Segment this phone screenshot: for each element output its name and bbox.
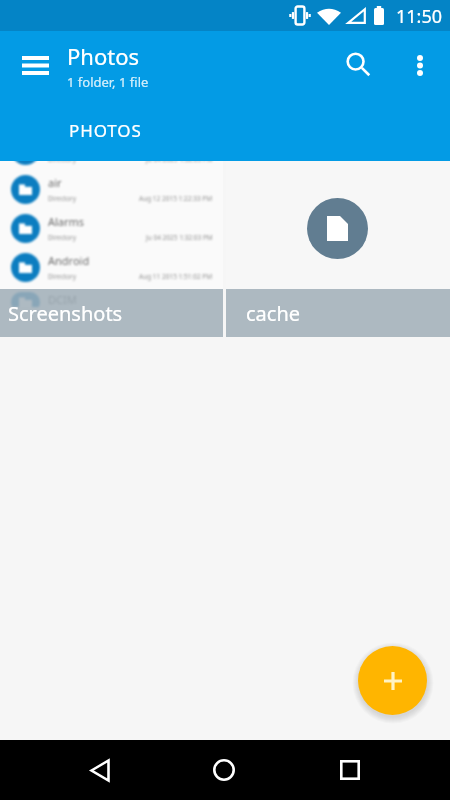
- button[interactable]: Back: [70, 740, 130, 800]
- button[interactable]: Home: [194, 740, 254, 800]
- staticText: Ju 04 2025 1:32:03 PM: [146, 161, 213, 164]
- button[interactable]: Alarms: [0, 161, 223, 337]
- staticText: Ju 04 2025 1:32:03 PM: [146, 233, 213, 242]
- staticText: Photos: [67, 41, 140, 71]
- button[interactable]: PHOTOS: [53, 115, 158, 145]
- button[interactable]: More options: [396, 41, 444, 89]
- staticText: DCIM: [48, 292, 77, 307]
- button[interactable]: Recent apps: [320, 740, 380, 800]
- staticText: Android: [48, 253, 90, 268]
- staticText: Aug 12 2015 1:22:33 PM: [139, 194, 213, 203]
- staticText: Directory: [48, 161, 77, 164]
- staticText: Alarms: [48, 214, 85, 229]
- staticText: air: [48, 175, 62, 190]
- button[interactable]: Open navigation drawer: [10, 40, 60, 90]
- staticText: cache: [246, 300, 301, 327]
- staticText: Directory: [48, 311, 77, 320]
- staticText: 11:50: [396, 4, 443, 29]
- staticText: Directory: [48, 233, 77, 242]
- staticText: Screenshots: [8, 300, 123, 327]
- staticText: PHOTOS: [69, 119, 142, 142]
- staticText: Directory: [48, 272, 77, 281]
- button[interactable]: Search: [334, 40, 382, 88]
- staticText: Aug 11 2015 1:51:02 PM: [139, 272, 213, 281]
- staticText: 1 folder, 1 file: [67, 73, 149, 91]
- button[interactable]: cache: [226, 161, 450, 337]
- staticText: Directory: [48, 194, 77, 203]
- button[interactable]: Add: [358, 646, 427, 715]
